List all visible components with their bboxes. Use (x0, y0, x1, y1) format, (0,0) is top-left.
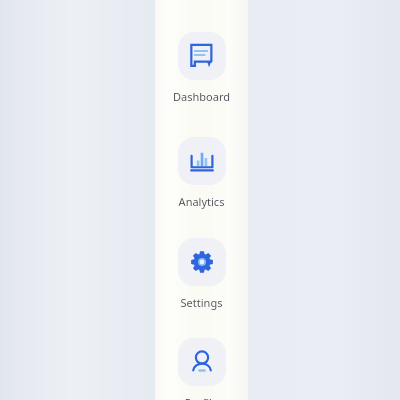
staticText: Profile (155, 395, 248, 400)
staticText: Analytics (155, 194, 248, 209)
other: Settings (178, 238, 226, 286)
button[interactable]: Dashboard (155, 32, 248, 104)
button[interactable]: Profile (155, 338, 248, 400)
staticText: Dashboard (155, 89, 248, 104)
button[interactable]: Settings (155, 238, 248, 310)
other: Profile (178, 338, 226, 386)
other: Dashboard (178, 32, 226, 80)
staticText: Settings (155, 295, 248, 310)
button[interactable]: Analytics (155, 137, 248, 209)
other: Analytics (178, 137, 226, 185)
